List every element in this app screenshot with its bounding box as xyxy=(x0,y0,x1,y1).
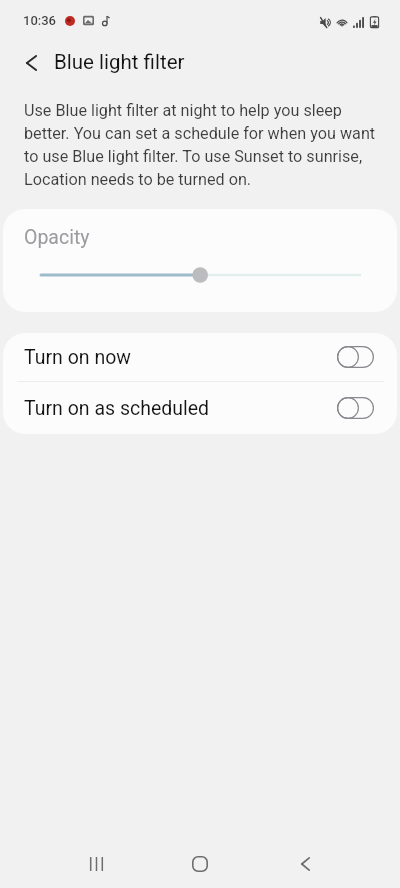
staticText: Turn on now xyxy=(24,346,131,369)
button[interactable]: Turn on now xyxy=(3,333,397,381)
staticText: Opacity xyxy=(24,226,90,249)
button[interactable]: Opacity slider xyxy=(3,257,397,293)
staticText: Blue light filter xyxy=(54,50,185,74)
button[interactable]: Turn on as scheduled xyxy=(3,382,397,434)
button[interactable]: Recent apps xyxy=(64,839,128,888)
button[interactable]: Home xyxy=(168,839,232,888)
staticText: 10:36 xyxy=(23,13,56,28)
button[interactable]: Back xyxy=(273,839,337,888)
button[interactable]: Back xyxy=(0,38,54,87)
staticText: Turn on as scheduled xyxy=(24,397,210,420)
staticText: Use Blue light filter at night to help y… xyxy=(24,101,384,189)
